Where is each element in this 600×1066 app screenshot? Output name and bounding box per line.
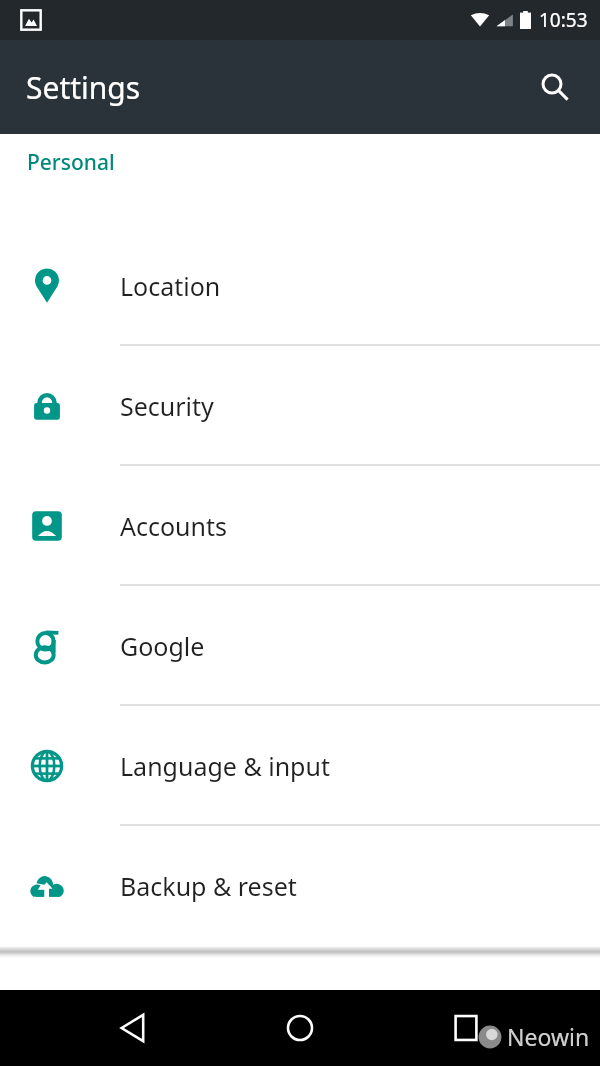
button[interactable]: Language & input xyxy=(0,706,600,826)
button[interactable]: Recent apps xyxy=(437,999,495,1057)
staticText: Settings xyxy=(26,67,141,108)
button[interactable]: Home xyxy=(271,999,329,1057)
button[interactable]: Accounts xyxy=(0,466,600,586)
staticText: Backup & reset xyxy=(120,869,297,903)
staticText: Language & input xyxy=(120,749,330,783)
staticText: Google xyxy=(120,629,205,663)
staticText: Neowin xyxy=(507,1021,590,1052)
staticText: Accounts xyxy=(120,509,228,543)
button[interactable]: Backup & reset xyxy=(0,826,600,946)
button[interactable]: Back xyxy=(104,999,162,1057)
button[interactable]: Location xyxy=(0,226,600,346)
button[interactable]: Google xyxy=(0,586,600,706)
staticText: Security xyxy=(120,389,214,423)
staticText: Location xyxy=(120,269,221,303)
button[interactable]: Search xyxy=(528,60,582,114)
staticText: Personal xyxy=(27,148,115,177)
staticText: 10:53 xyxy=(539,7,588,33)
button[interactable]: Security xyxy=(0,346,600,466)
